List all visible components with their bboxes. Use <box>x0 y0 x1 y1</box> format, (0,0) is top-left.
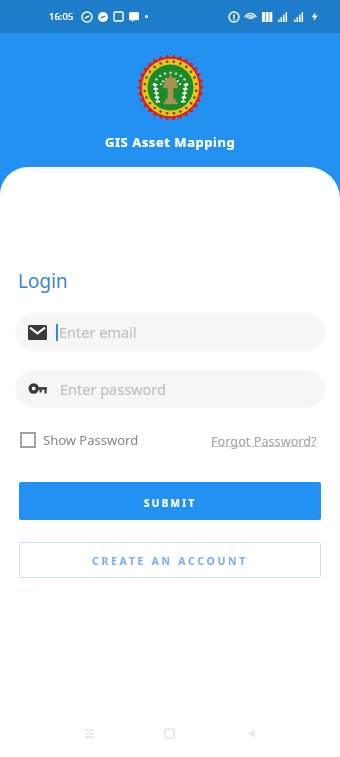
button[interactable]: SUBMIT <box>19 482 321 520</box>
staticText: GIS Asset Mapping <box>105 133 236 151</box>
staticText: 16:05 <box>49 10 74 23</box>
staticText: Show Password <box>43 431 139 449</box>
button[interactable]: Enter email <box>15 313 325 351</box>
button[interactable]: CREATE AN ACCOUNT <box>19 542 321 578</box>
staticText: CREATE AN ACCOUNT <box>92 554 249 568</box>
button[interactable]: Show Password <box>20 431 139 449</box>
button[interactable]: Home <box>149 713 189 753</box>
button[interactable]: Recent apps <box>69 713 109 753</box>
staticText: Enter email <box>59 322 137 342</box>
staticText: Enter password <box>60 379 166 399</box>
button[interactable]: Enter password <box>15 370 325 408</box>
staticText: Login <box>18 268 68 294</box>
staticText: SUBMIT <box>144 496 197 510</box>
staticText: Forgot Password? <box>211 432 317 449</box>
button[interactable]: Forgot Password? <box>211 432 317 449</box>
